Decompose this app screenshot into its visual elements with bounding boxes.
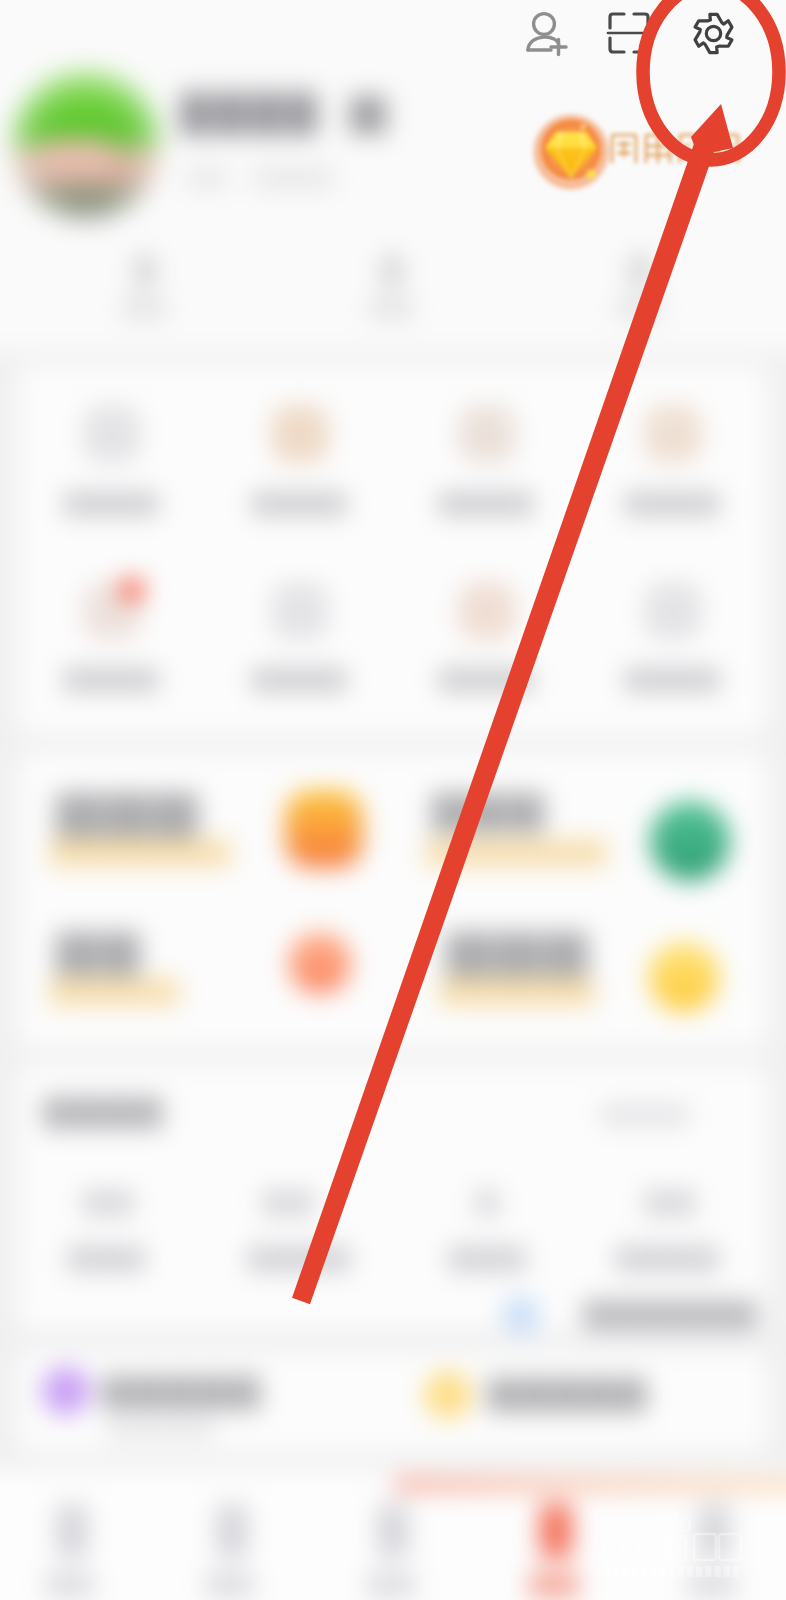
button[interactable]: Scan QR code [604,8,660,64]
button[interactable]: Settings [688,8,744,64]
button[interactable]: Add friend [518,8,574,64]
